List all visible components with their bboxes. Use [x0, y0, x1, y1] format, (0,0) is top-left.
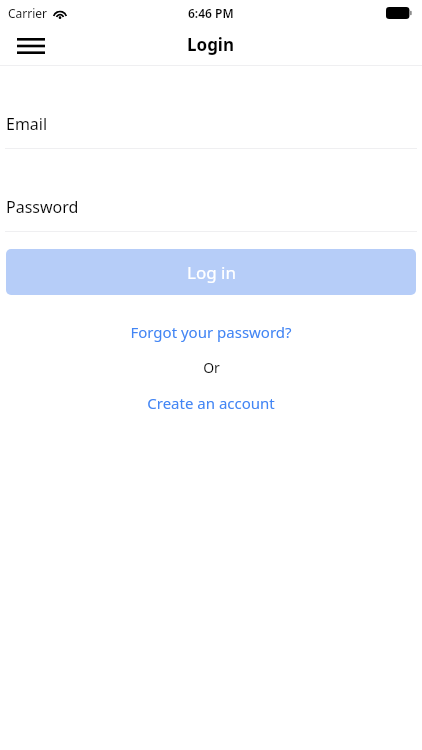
staticText: Carrier	[8, 5, 48, 21]
staticText: Password	[6, 196, 79, 218]
button[interactable]: Create an account	[0, 390, 422, 415]
staticText: 6:46 PM	[188, 5, 234, 21]
button[interactable]: Forgot your password?	[0, 319, 422, 344]
staticText: Forgot your password?	[130, 322, 292, 342]
staticText: Log in	[187, 261, 236, 284]
staticText: Email	[6, 113, 48, 135]
staticText: Create an account	[147, 393, 275, 413]
staticText: Login	[187, 33, 235, 56]
staticText: Or	[203, 358, 220, 377]
button[interactable]: Menu	[9, 29, 53, 63]
button[interactable]: Log in	[6, 249, 416, 295]
